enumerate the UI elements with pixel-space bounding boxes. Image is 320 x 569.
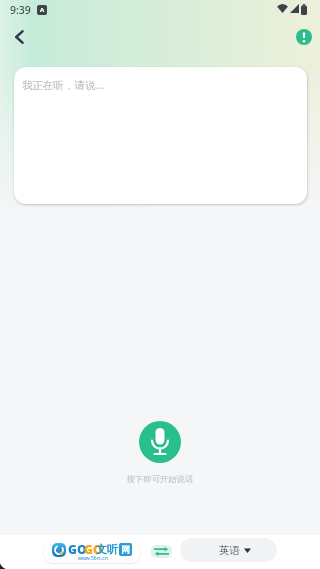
staticText: 文 — [96, 542, 107, 556]
button[interactable] — [151, 545, 172, 558]
staticText: 按下即可开始说话 — [0, 474, 320, 484]
button[interactable] — [139, 421, 181, 463]
button[interactable]: 英语 — [180, 538, 277, 562]
staticText: 我正在听，请说... — [22, 78, 104, 92]
button[interactable] — [296, 29, 312, 45]
staticText: A — [40, 6, 45, 14]
staticText: GO — [68, 541, 87, 557]
staticText: 网 — [121, 544, 130, 555]
staticText: 英语 — [219, 544, 240, 557]
staticText: 听 — [107, 542, 118, 556]
button[interactable] — [6, 24, 32, 50]
staticText: www.56rc.cn — [78, 555, 108, 562]
staticText: 9:39 — [10, 3, 31, 17]
staticText: GO — [84, 541, 103, 557]
